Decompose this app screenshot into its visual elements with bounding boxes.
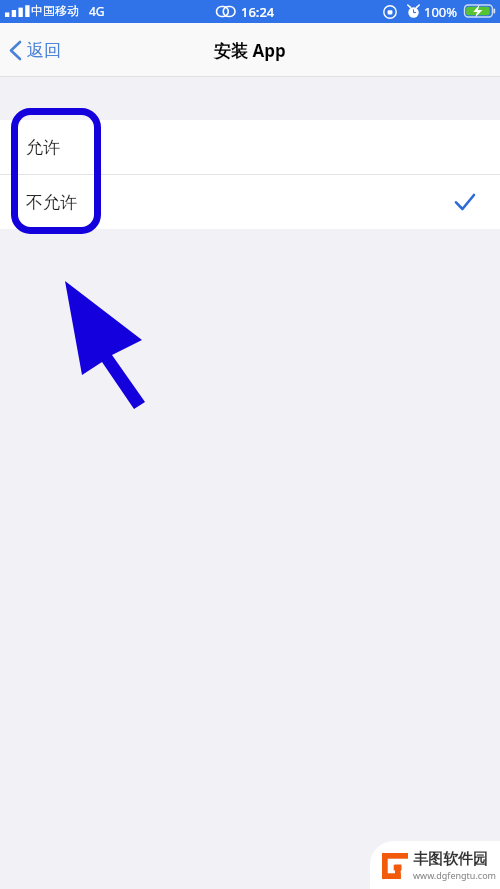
staticText: 允许 [26,137,60,158]
staticText: 4G [89,3,105,19]
staticText: 16:24 [241,3,275,21]
staticText: 安装 App [214,39,286,62]
staticText: 返回 [27,40,61,61]
staticText: www.dgfengtu.com [413,869,497,881]
staticText: 100% [424,3,458,21]
button[interactable]: 返回 [0,34,71,67]
staticText: 不允许 [26,192,77,213]
button[interactable]: 允许 [0,120,500,174]
staticText: 丰图软件园 [413,850,488,869]
button[interactable]: 不允许 [0,175,500,229]
staticText: 中国移动 [31,3,79,18]
